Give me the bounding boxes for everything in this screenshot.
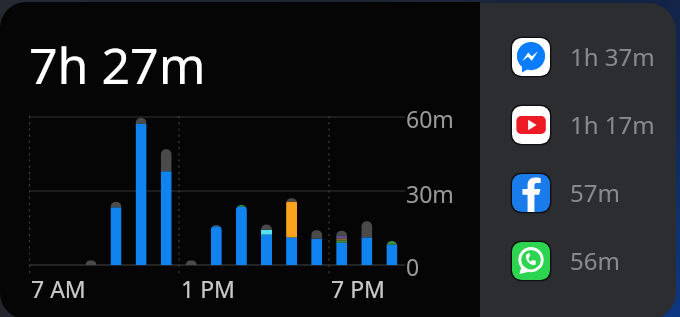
staticText: 0 — [406, 251, 420, 282]
other: Messenger — [512, 38, 550, 76]
staticText: 57m — [570, 176, 620, 209]
staticText: 1h 17m — [570, 108, 655, 141]
staticText: 30m — [406, 178, 454, 209]
button[interactable]: Facebook — [502, 165, 670, 221]
button[interactable]: Messenger — [502, 29, 670, 85]
staticText: 56m — [570, 244, 620, 277]
staticText: 7 AM — [31, 273, 86, 304]
staticText: 60m — [406, 103, 454, 134]
staticText: 7h 27m — [29, 31, 206, 99]
staticText: 1h 37m — [570, 40, 655, 73]
other: Facebook — [512, 174, 550, 212]
button[interactable]: WhatsApp — [502, 233, 670, 289]
button[interactable] — [0, 2, 480, 317]
other: WhatsApp — [512, 242, 550, 280]
button[interactable]: YouTube — [502, 97, 670, 153]
staticText: 1 PM — [181, 273, 235, 304]
staticText: 7 PM — [331, 273, 385, 304]
other: YouTube — [512, 106, 550, 144]
